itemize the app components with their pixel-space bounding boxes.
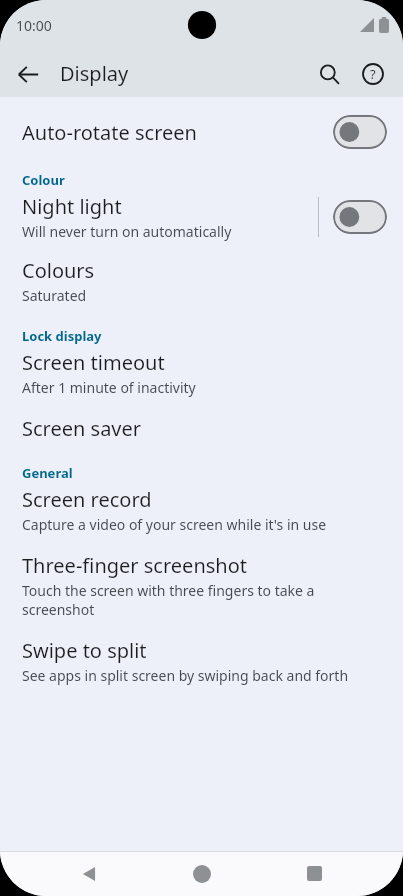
button[interactable]: Colours bbox=[0, 243, 403, 307]
button[interactable]: Night light switch bbox=[333, 200, 387, 234]
staticText: Colour bbox=[22, 171, 65, 189]
button[interactable]: Swipe to split bbox=[0, 621, 403, 687]
staticText: General bbox=[22, 464, 73, 482]
button[interactable]: Night light bbox=[0, 189, 403, 243]
staticText: Auto-rotate screen bbox=[22, 119, 197, 146]
staticText: Display bbox=[60, 60, 129, 87]
button[interactable]: Search bbox=[307, 52, 351, 96]
staticText: ? bbox=[370, 65, 376, 83]
button[interactable]: Auto-rotate screen bbox=[0, 97, 403, 151]
staticText: Screen timeout bbox=[22, 349, 165, 376]
button[interactable]: Auto-rotate screen switch bbox=[333, 115, 387, 149]
button[interactable]: Back bbox=[65, 851, 113, 896]
staticText: Three-finger screenshot bbox=[22, 552, 247, 579]
button[interactable]: Home bbox=[178, 851, 226, 896]
button[interactable]: Screen saver bbox=[0, 399, 403, 444]
staticText: Saturated bbox=[22, 286, 87, 305]
staticText: See apps in split screen by swiping back… bbox=[22, 666, 349, 685]
staticText: Will never turn on automatically bbox=[22, 222, 232, 241]
staticText: 10:00 bbox=[16, 16, 52, 35]
button[interactable]: Back bbox=[8, 54, 48, 94]
staticText: Night light bbox=[22, 193, 122, 220]
button[interactable]: Help bbox=[351, 52, 395, 96]
staticText: Screen record bbox=[22, 486, 152, 513]
staticText: Screen saver bbox=[22, 415, 142, 442]
button[interactable]: Screen record bbox=[0, 482, 403, 536]
staticText: Colours bbox=[22, 257, 95, 284]
button[interactable]: Screen timeout bbox=[0, 345, 403, 399]
button[interactable]: Recent apps bbox=[290, 851, 338, 896]
staticText: Swipe to split bbox=[22, 637, 147, 664]
button[interactable]: Three-finger screenshot bbox=[0, 536, 403, 621]
staticText: After 1 minute of inactivity bbox=[22, 378, 196, 397]
staticText: Touch the screen with three fingers to t… bbox=[22, 581, 315, 619]
staticText: Lock display bbox=[22, 327, 102, 345]
staticText: Capture a video of your screen while it'… bbox=[22, 515, 327, 534]
